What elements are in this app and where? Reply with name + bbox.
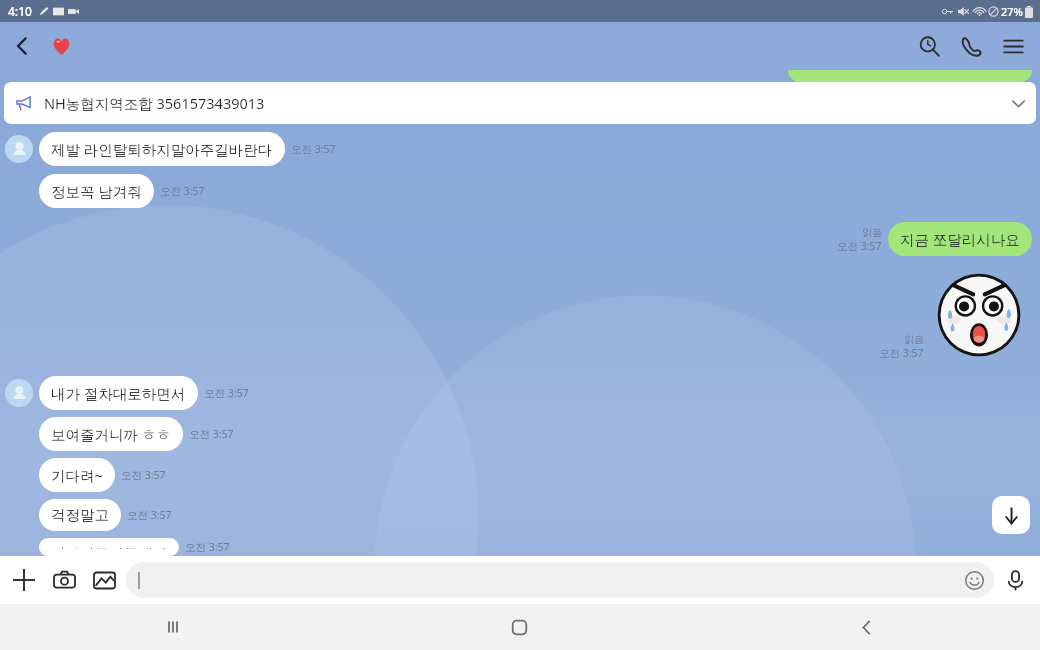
button[interactable]: [44, 29, 78, 63]
button[interactable]: Profile: [5, 379, 33, 407]
staticText: 오전 3:57: [879, 346, 924, 360]
button[interactable]: Gallery: [84, 560, 124, 600]
button[interactable]: Emoji: [960, 566, 988, 594]
button[interactable]: Call: [950, 25, 992, 67]
staticText: 걱정말고: [51, 506, 109, 524]
button[interactable]: 정보꼭 남겨줘: [39, 174, 154, 208]
button[interactable]: Scroll to bottom: [992, 496, 1030, 534]
staticText: 오전 3:57: [121, 468, 166, 482]
button[interactable]: Menu: [992, 25, 1034, 67]
button[interactable]: Expand notice: [1000, 85, 1036, 121]
staticText: 오전 3:57: [160, 184, 205, 198]
staticText: 오전 3:57: [291, 142, 336, 156]
staticText: 27%: [1001, 4, 1023, 19]
staticText: 지금 쪼달리시나요: [900, 229, 1020, 249]
button[interactable]: Sticker: [932, 268, 1026, 362]
staticText: 내가 절차대로하면서: [51, 383, 186, 403]
staticText: 4:10: [8, 3, 32, 19]
staticText: 오전 3:57: [185, 540, 230, 554]
staticText: 오전 3:57: [127, 508, 172, 522]
button[interactable]: 지금 쪼달리시나요: [888, 222, 1032, 256]
staticText: 오전 3:57: [837, 239, 882, 253]
button[interactable]: 보여줄거니까 ㅎㅎ: [39, 417, 183, 451]
button[interactable]: 내가 절차대로하면서: [39, 376, 198, 410]
staticText: 읽음: [904, 333, 924, 346]
button[interactable]: Camera: [44, 560, 84, 600]
staticText: 정보꼭 남겨줘: [51, 181, 142, 201]
staticText: 기다려~: [51, 465, 103, 485]
button[interactable]: 서가서꼭봐줄테니: [39, 538, 179, 556]
staticText: 오전 3:57: [189, 427, 234, 441]
button[interactable]: 제발 라인탈퇴하지말아주길바란다: [39, 132, 285, 166]
button[interactable]: 기다려~: [39, 458, 115, 492]
staticText: 서가서꼭봐줄테니: [51, 545, 167, 549]
staticText: NH농협지역조합 3561573439013: [44, 93, 265, 113]
button[interactable]: Emoji: [126, 562, 994, 598]
button[interactable]: Back: [0, 24, 44, 68]
staticText: 읽음: [862, 226, 882, 239]
button[interactable]: Profile: [5, 135, 33, 163]
button[interactable]: 걱정말고: [39, 499, 121, 531]
button[interactable]: Home: [346, 604, 693, 650]
button[interactable]: Recents: [0, 604, 346, 650]
button[interactable]: Voice message: [994, 559, 1036, 601]
button[interactable]: NH농협지역조합 3561573439013: [4, 82, 1036, 124]
staticText: 제발 라인탈퇴하지말아주길바란다: [51, 139, 273, 159]
button[interactable]: Back: [693, 604, 1040, 650]
button[interactable]: Add: [4, 560, 44, 600]
staticText: 오전 3:57: [204, 386, 249, 400]
button[interactable]: Search: [908, 25, 950, 67]
staticText: 보여줄거니까 ㅎㅎ: [51, 424, 171, 444]
